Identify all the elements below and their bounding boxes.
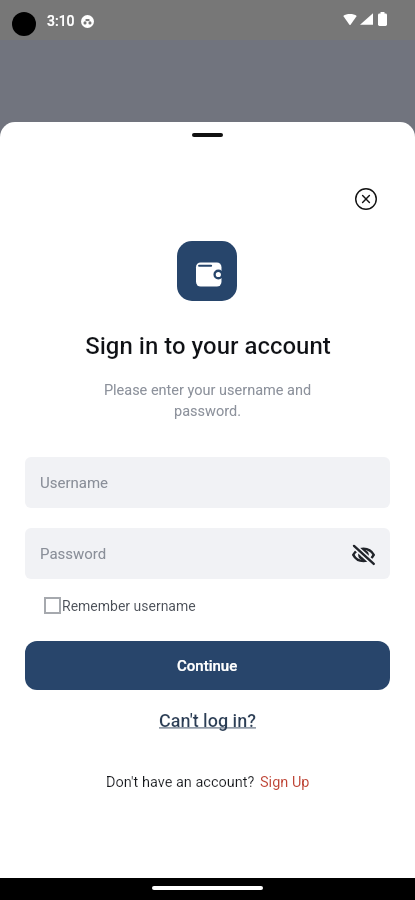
button[interactable]: Sign Up [260, 774, 310, 791]
staticText: Continue [177, 657, 238, 675]
staticText: Password [40, 545, 107, 563]
button[interactable]: Close [352, 185, 380, 213]
staticText: Can't log in? [159, 710, 256, 731]
button[interactable]: Can't log in? [159, 710, 256, 731]
staticText: Username [40, 474, 109, 492]
staticText: Don't have an account? [106, 774, 255, 791]
button[interactable]: Remember username [44, 597, 196, 614]
staticText: 3:10 [47, 13, 75, 29]
button[interactable]: Continue [25, 641, 390, 690]
staticText: Sign Up [260, 774, 310, 791]
staticText: Remember username [62, 598, 196, 614]
button[interactable]: Username [25, 457, 390, 508]
button[interactable]: Show password [349, 540, 377, 568]
button[interactable]: Password [25, 528, 390, 579]
staticText: Sign in to your account [85, 332, 331, 360]
staticText: Please enter your username and password. [100, 382, 315, 419]
